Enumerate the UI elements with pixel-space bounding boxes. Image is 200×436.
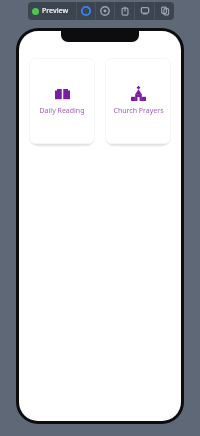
button[interactable]: Show on screen: [135, 2, 154, 20]
button[interactable]: Run preview: [77, 2, 95, 20]
button[interactable]: Preview: [28, 2, 76, 20]
button[interactable]: Deploy to device: [115, 2, 134, 20]
staticText: Preview: [42, 6, 69, 16]
staticText: Daily Reading: [39, 106, 85, 116]
button[interactable]: Copy: [155, 2, 174, 20]
button[interactable]: Daily Reading: [29, 58, 95, 144]
button[interactable]: Interactive mode: [96, 2, 114, 20]
staticText: Church Prayers: [113, 106, 164, 116]
other: Daily Reading: [55, 86, 70, 101]
button[interactable]: Church Prayers: [105, 58, 171, 144]
other: Church Prayers: [131, 86, 146, 101]
